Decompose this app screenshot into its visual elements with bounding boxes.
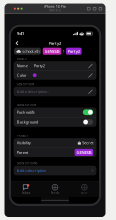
staticText: GENESIS	[76, 150, 91, 155]
staticText: DESCRIPTION	[17, 82, 34, 86]
staticText: Background	[17, 119, 38, 125]
staticText: Feeds	[51, 191, 59, 195]
staticText: Party2	[68, 48, 80, 54]
staticText: PRIVACY	[17, 134, 29, 137]
staticText: Add a description…	[17, 89, 50, 94]
staticText: Inbox	[22, 191, 30, 195]
staticText: BASICS	[17, 57, 26, 60]
staticText: Visibility	[17, 140, 31, 145]
button[interactable]: Record	[99, 7, 102, 10]
button[interactable]: Screenshot	[93, 7, 96, 10]
staticText: More	[81, 191, 88, 195]
staticText: Party2	[49, 40, 61, 46]
button[interactable]: Feeds	[40, 182, 70, 197]
staticText: iOS 16.2	[49, 8, 61, 12]
button[interactable]: Inbox	[11, 182, 40, 197]
staticText: GENESIS	[44, 48, 59, 54]
button[interactable]: Add subscription	[14, 166, 96, 175]
staticText: Secret	[82, 140, 93, 145]
staticText: school.xth	[22, 48, 39, 54]
staticText: Name	[17, 63, 28, 68]
staticText: Add subscription	[17, 168, 46, 173]
staticText: Parent	[17, 150, 28, 155]
staticText: Push notifs	[17, 109, 35, 115]
staticText: 9:41	[17, 31, 24, 36]
staticText: Color	[17, 72, 27, 78]
button[interactable]: More	[70, 182, 99, 197]
staticText: Party2	[34, 63, 45, 68]
staticText: SUBSCRIPTIONS	[17, 161, 37, 165]
button[interactable]: Back	[13, 39, 21, 47]
staticText: iPhone 14 Pro	[44, 5, 66, 8]
staticText: SUBSCRIPTION	[17, 103, 36, 107]
button[interactable]: Appearance	[87, 7, 90, 10]
